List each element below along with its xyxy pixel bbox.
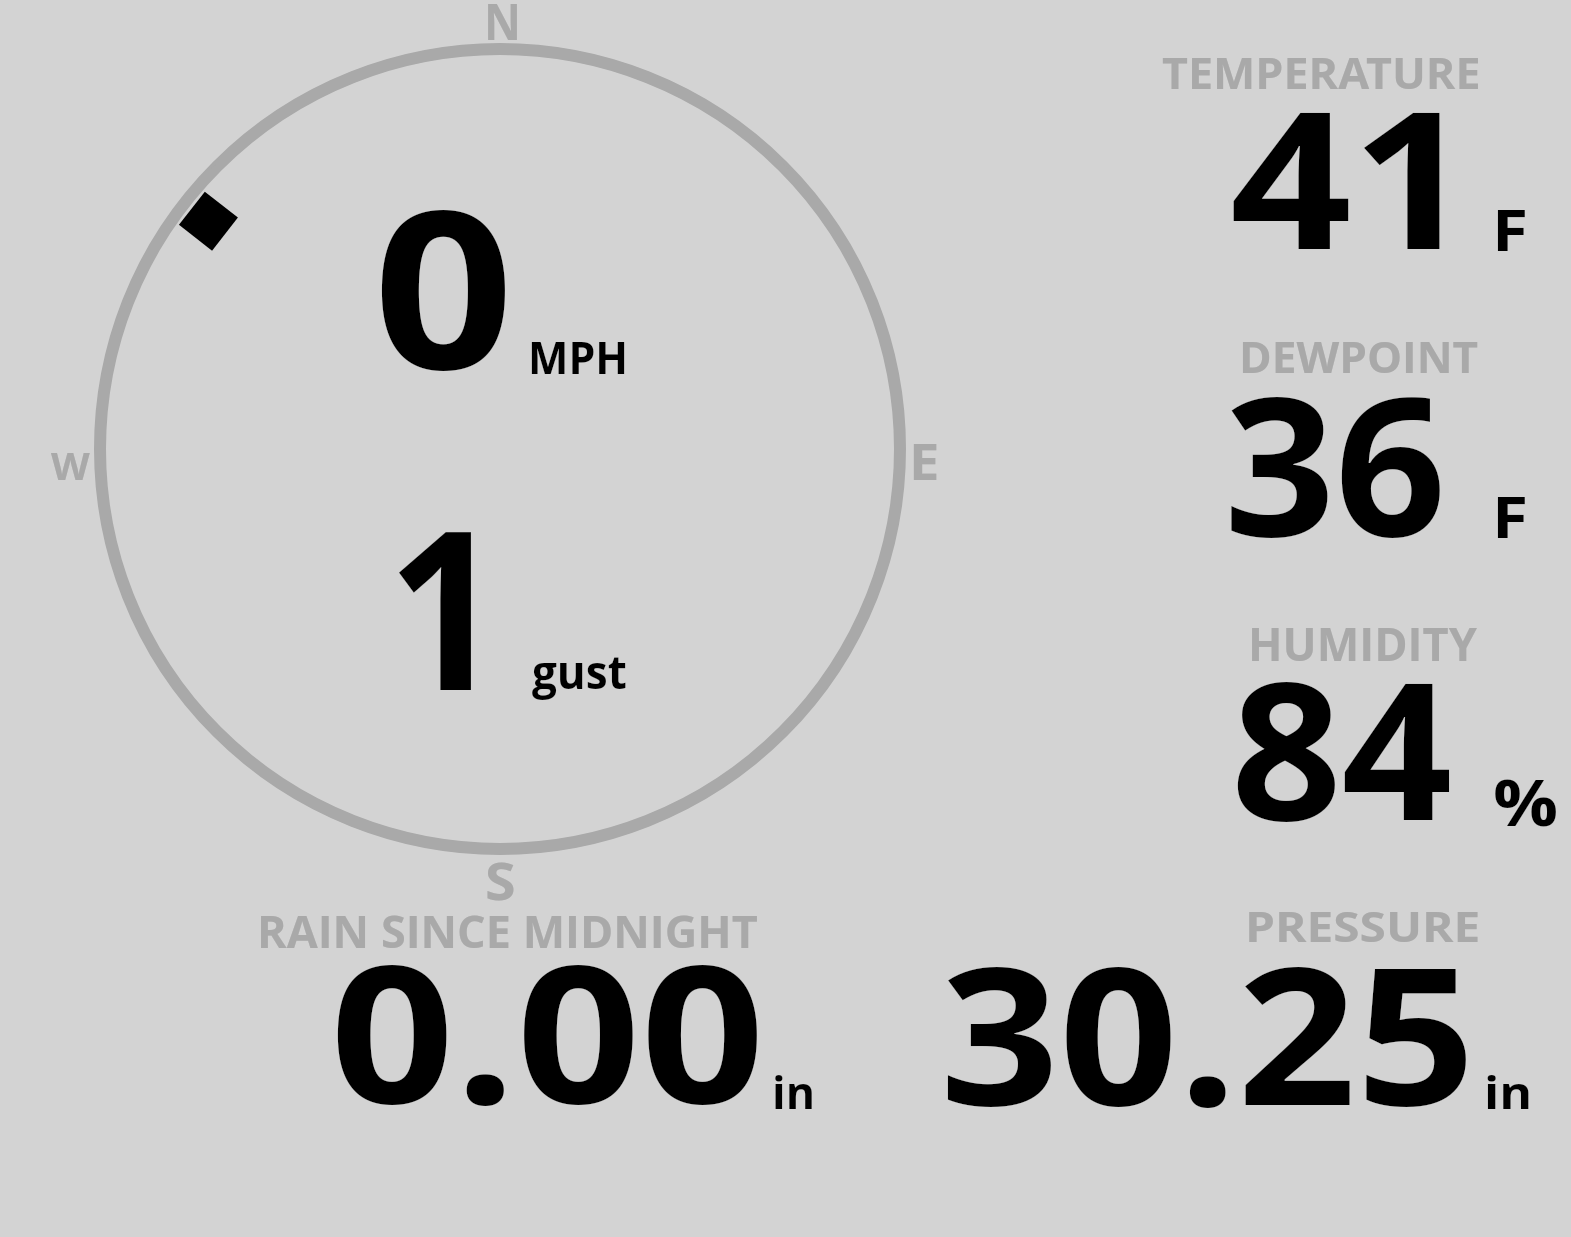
staticText: 84 — [1231, 617, 1453, 876]
staticText: 1 — [387, 454, 503, 754]
staticText: gust — [532, 639, 627, 702]
staticText: 41 — [1230, 46, 1474, 305]
staticText: PRESSURE — [1245, 898, 1481, 955]
staticText: HUMIDITY — [1248, 611, 1478, 674]
staticText: in — [772, 1061, 816, 1122]
staticText: W — [51, 439, 90, 491]
staticText: in — [1484, 1061, 1533, 1122]
staticText: 0.00 — [330, 899, 765, 1158]
button[interactable]: Rain since midnight: 0.00 inches — [240, 898, 840, 1128]
button[interactable]: Pressure: 30.25 inches — [900, 898, 1560, 1128]
staticText: % — [1493, 758, 1559, 845]
staticText: F — [1492, 190, 1529, 267]
staticText: 0 — [373, 135, 515, 433]
staticText: RAIN SINCE MIDNIGHT — [257, 901, 758, 961]
button[interactable]: Temperature: 41 degrees Fahrenheit — [1150, 45, 1571, 275]
staticText: 36 — [1224, 331, 1446, 592]
staticText: E — [909, 427, 940, 495]
staticText: MPH — [528, 326, 628, 388]
button[interactable]: Dewpoint: 36 degrees Fahrenheit — [1150, 330, 1571, 560]
button[interactable]: Wind: 0 miles per hour, gusting 1, from … — [96, 40, 916, 860]
staticText: S — [485, 845, 516, 915]
staticText: TEMPERATURE — [1162, 42, 1481, 102]
staticText: 30.25 — [940, 901, 1476, 1161]
button[interactable]: Humidity: 84 percent — [1150, 615, 1571, 845]
staticText: N — [484, 0, 521, 55]
staticText: DEWPOINT — [1239, 327, 1478, 386]
staticText: F — [1492, 477, 1529, 554]
